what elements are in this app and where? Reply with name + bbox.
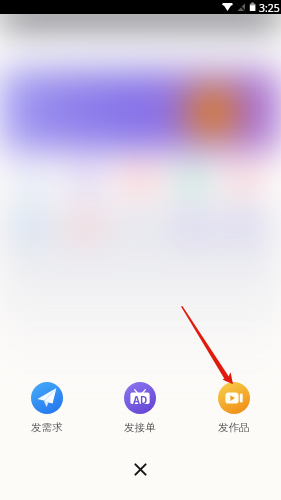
staticText: 发作品 xyxy=(218,421,250,434)
staticText: 发需求 xyxy=(31,421,63,434)
button[interactable]: AD xyxy=(106,375,173,438)
staticText: 3:25 xyxy=(259,1,280,15)
button[interactable]: 发需求 xyxy=(13,375,80,438)
staticText: AD xyxy=(133,393,148,407)
button[interactable]: 发作品 xyxy=(200,375,267,438)
button[interactable]: Close xyxy=(110,450,171,488)
staticText: 发接单 xyxy=(124,421,156,434)
